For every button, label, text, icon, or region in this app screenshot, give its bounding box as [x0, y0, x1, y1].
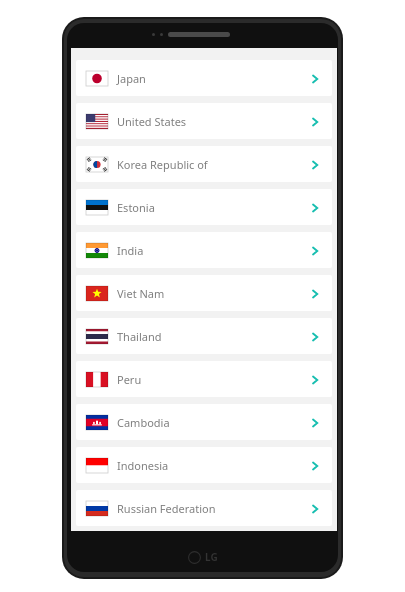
other: Open Japan: [308, 72, 322, 86]
staticText: India: [117, 243, 308, 258]
staticText: Peru: [117, 372, 308, 387]
button[interactable]: India: [76, 232, 332, 268]
other: Open Russian Federation: [308, 502, 322, 516]
button[interactable]: Thailand: [76, 318, 332, 354]
button[interactable]: Viet Nam: [76, 275, 332, 311]
staticText: Estonia: [117, 200, 308, 215]
button[interactable]: Cambodia: [76, 404, 332, 440]
button[interactable]: Estonia: [76, 189, 332, 225]
staticText: Viet Nam: [117, 286, 308, 301]
staticText: Russian Federation: [117, 501, 308, 516]
button[interactable]: Peru: [76, 361, 332, 397]
staticText: United States: [117, 114, 308, 129]
other: Open Indonesia: [308, 459, 322, 473]
other: Open Viet Nam: [308, 287, 322, 301]
staticText: Thailand: [117, 329, 308, 344]
button[interactable]: Japan: [76, 60, 332, 96]
other: Open Peru: [308, 373, 322, 387]
button[interactable]: Korea Republic of: [76, 146, 332, 182]
button[interactable]: Indonesia: [76, 447, 332, 483]
staticText: LG: [205, 550, 218, 564]
staticText: Indonesia: [117, 458, 308, 473]
staticText: Japan: [117, 71, 308, 86]
button[interactable]: United States: [76, 103, 332, 139]
staticText: Cambodia: [117, 415, 308, 430]
other: Open Thailand: [308, 330, 322, 344]
other: Open Estonia: [308, 201, 322, 215]
other: Open Cambodia: [308, 416, 322, 430]
staticText: Korea Republic of: [117, 157, 308, 172]
other: Open United States: [308, 115, 322, 129]
button[interactable]: Russian Federation: [76, 490, 332, 526]
other: Open Korea Republic of: [308, 158, 322, 172]
other: Open India: [308, 244, 322, 258]
